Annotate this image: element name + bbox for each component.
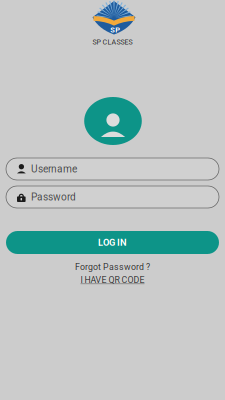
staticText: Password bbox=[31, 191, 76, 203]
button[interactable]: LOG IN bbox=[6, 231, 219, 254]
button[interactable]: Username bbox=[6, 158, 219, 180]
staticText: I HAVE QR CODE bbox=[80, 275, 144, 285]
button[interactable]: I HAVE QR CODE bbox=[0, 274, 225, 286]
staticText: LOG IN bbox=[98, 237, 127, 248]
staticText: Forgot Password ? bbox=[75, 262, 150, 272]
staticText: SP CLASSES bbox=[92, 38, 132, 46]
button[interactable]: Password bbox=[6, 186, 219, 208]
staticText: SP bbox=[110, 26, 120, 34]
button[interactable]: Forgot Password ? bbox=[0, 261, 225, 273]
staticText: Username bbox=[31, 163, 77, 175]
